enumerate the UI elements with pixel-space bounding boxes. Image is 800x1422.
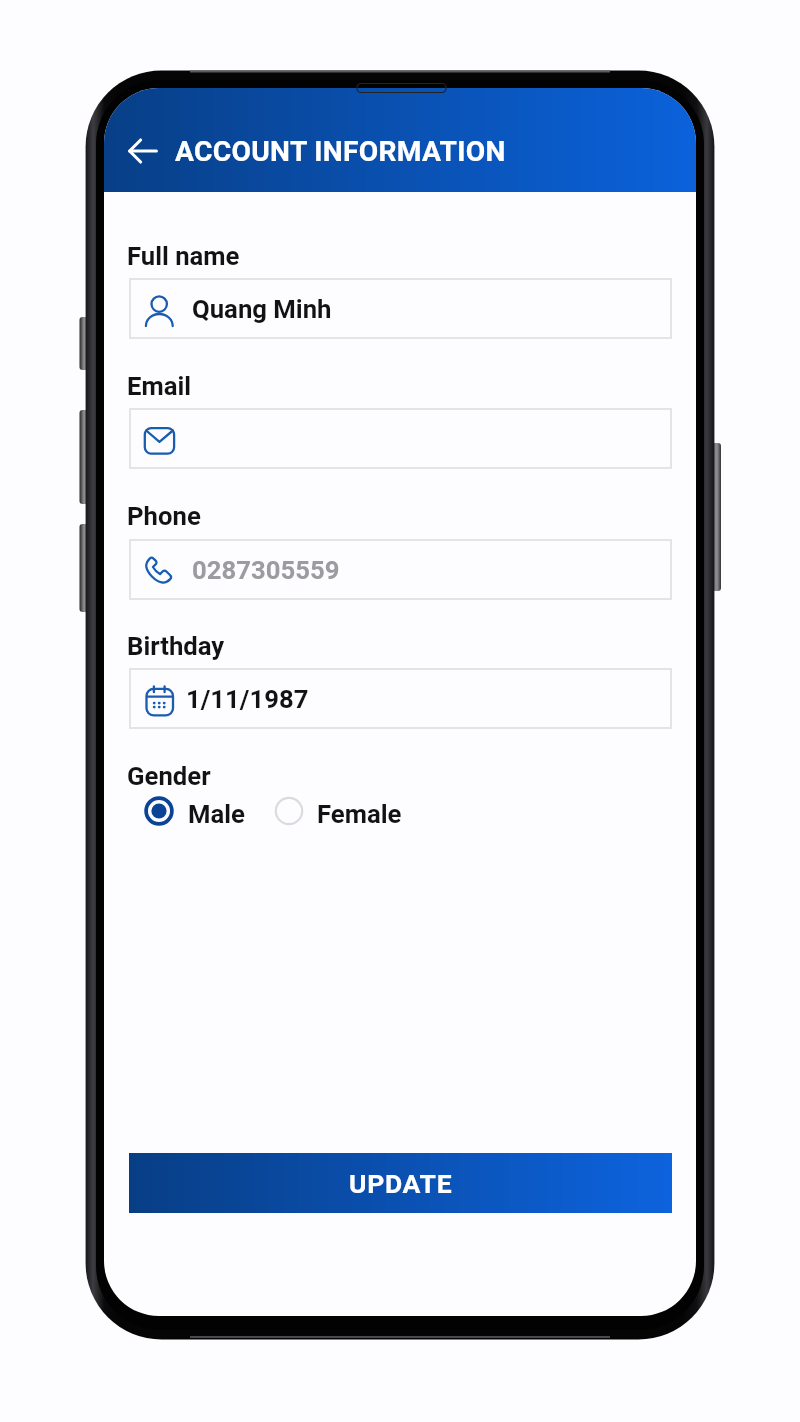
staticText: Quang Minh: [192, 294, 332, 324]
button[interactable]: [129, 668, 672, 729]
staticText: 0287305559: [192, 555, 340, 585]
staticText: Full name: [127, 241, 240, 271]
staticText: Female: [317, 799, 402, 829]
staticText: 1/11/1987: [186, 684, 309, 714]
staticText: Birthday: [127, 631, 225, 661]
staticText: Gender: [127, 761, 211, 791]
button[interactable]: [129, 278, 672, 339]
button[interactable]: Back: [128, 133, 158, 169]
button[interactable]: [129, 408, 672, 469]
staticText: Male: [188, 799, 245, 829]
button[interactable]: [129, 539, 672, 600]
button[interactable]: UPDATE: [129, 1153, 672, 1213]
staticText: Phone: [127, 501, 201, 531]
staticText: ACCOUNT INFORMATION: [175, 135, 506, 168]
button[interactable]: Female: [271, 793, 403, 833]
staticText: Email: [127, 371, 192, 401]
staticText: UPDATE: [349, 1168, 453, 1199]
button[interactable]: Male: [141, 793, 274, 833]
